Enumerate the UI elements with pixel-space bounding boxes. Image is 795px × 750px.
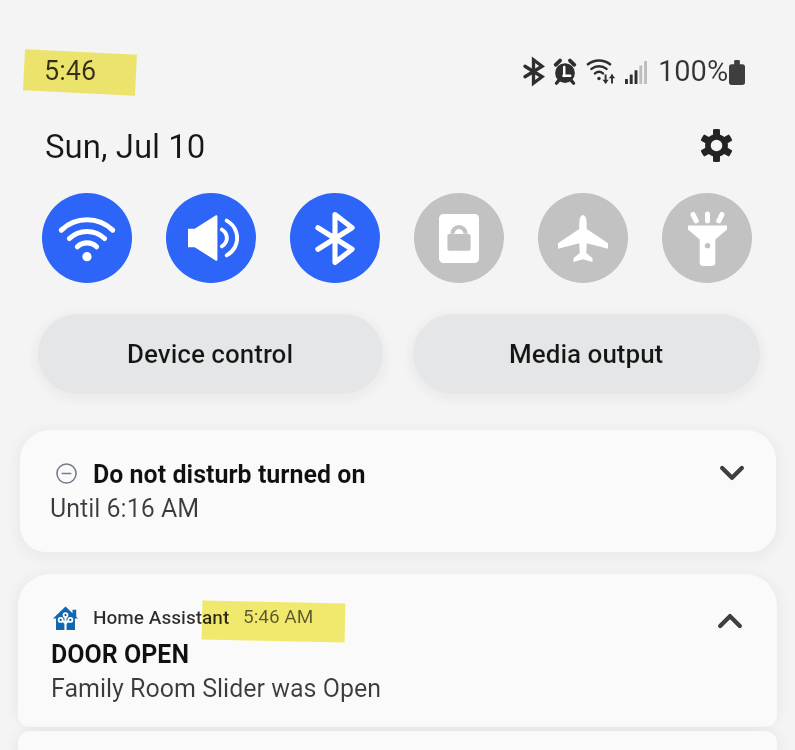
staticText: Home Assistant: [93, 606, 230, 628]
button[interactable]: Expand notification: [703, 443, 761, 501]
staticText: DOOR OPEN: [51, 640, 190, 669]
button[interactable]: Screen lock: [414, 193, 504, 283]
staticText: Device control: [127, 339, 294, 369]
staticText: Until 6:16 AM: [50, 494, 200, 523]
staticText: 5:46 AM: [243, 605, 314, 627]
button[interactable]: Do not disturb turned on: [20, 430, 776, 552]
button[interactable]: Bluetooth: [290, 193, 380, 283]
staticText: Do not disturb turned on: [93, 460, 366, 489]
staticText: Media output: [509, 339, 664, 369]
staticText: 5:46: [44, 55, 97, 87]
button[interactable]: Wi-Fi: [42, 193, 132, 283]
staticText: Family Room Slider was Open: [51, 674, 381, 703]
button[interactable]: Device control: [38, 314, 383, 394]
button[interactable]: Media output: [413, 314, 760, 394]
button[interactable]: Home Assistant: [18, 574, 777, 727]
staticText: Sun, Jul 10: [45, 127, 206, 166]
staticText: 100%: [658, 54, 729, 88]
button[interactable]: Flashlight: [662, 193, 752, 283]
button[interactable]: Collapse notification: [701, 592, 759, 650]
button[interactable]: Sound: [166, 193, 256, 283]
button[interactable]: Airplane mode: [538, 193, 628, 283]
button[interactable]: Settings: [692, 121, 740, 169]
